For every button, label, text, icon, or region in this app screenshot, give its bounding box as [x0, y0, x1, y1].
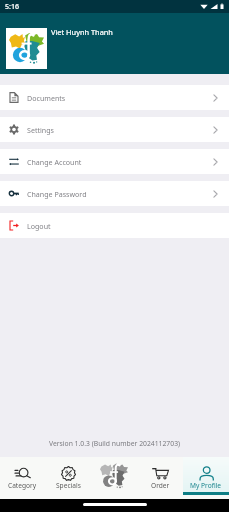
staticText: Documents: [27, 93, 66, 103]
button[interactable]: Change Account: [0, 149, 229, 174]
staticText: Logout: [27, 221, 51, 231]
staticText: Settings: [27, 125, 54, 135]
staticText: Specials: [56, 481, 81, 490]
staticText: Category: [8, 481, 37, 490]
button[interactable]: Order: [137, 457, 183, 499]
staticText: Version 1.0.3 (Build number 2024112703): [0, 439, 229, 448]
button[interactable]: Documents: [0, 85, 229, 110]
button[interactable]: Logout: [0, 213, 229, 238]
button[interactable]: Category: [0, 457, 45, 499]
button[interactable]: Home: [91, 457, 137, 499]
staticText: Change Account: [27, 157, 82, 167]
staticText: Viet Huynh Thanh: [51, 27, 113, 37]
button[interactable]: My Profile: [183, 457, 229, 499]
staticText: Change Password: [27, 189, 87, 199]
button[interactable]: Change Password: [0, 181, 229, 206]
button[interactable]: Specials: [45, 457, 91, 499]
staticText: My Profile: [190, 481, 222, 490]
staticText: Order: [151, 481, 170, 490]
staticText: 5:16: [5, 2, 19, 12]
button[interactable]: Settings: [0, 117, 229, 142]
